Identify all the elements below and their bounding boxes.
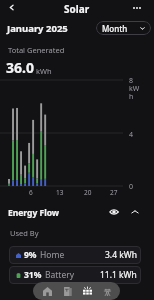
staticText: 8 <box>129 76 134 86</box>
staticText: 13 <box>56 188 64 197</box>
staticText: kWh <box>36 66 52 76</box>
staticText: Energy Flow <box>8 207 60 219</box>
button[interactable]: 31% <box>9 266 141 284</box>
button[interactable]: Devices <box>57 282 77 300</box>
button[interactable]: Grid <box>97 282 117 300</box>
button[interactable]: Toggle visibility <box>107 205 121 219</box>
button[interactable]: Back <box>3 0 19 15</box>
button[interactable]: Month <box>96 21 151 35</box>
staticText: Used By <box>10 228 39 238</box>
staticText: 20 <box>84 188 92 197</box>
staticText: 27 <box>110 188 118 197</box>
button[interactable]: 9% <box>9 246 141 264</box>
staticText: h <box>129 92 134 102</box>
staticText: 4 <box>129 130 134 140</box>
staticText: Total Generated <box>8 45 65 55</box>
staticText: 31% <box>24 269 42 281</box>
staticText: January 2025 <box>7 22 68 35</box>
staticText: 3.4 kWh <box>105 249 137 261</box>
staticText: kW <box>129 84 140 94</box>
staticText: 36.0 <box>6 58 34 77</box>
staticText: Home <box>40 249 65 261</box>
staticText: 6 <box>29 188 33 197</box>
button[interactable]: Collapse <box>128 205 142 219</box>
staticText: 0 <box>129 182 134 192</box>
button[interactable]: Solar <box>77 282 97 300</box>
staticText: Solar <box>64 2 90 16</box>
staticText: Battery <box>45 269 75 281</box>
button[interactable]: Home <box>37 282 57 300</box>
button[interactable]: More options <box>128 0 146 17</box>
staticText: Month <box>102 23 128 34</box>
staticText: 9% <box>24 249 37 261</box>
staticText: 11.1 kWh <box>100 269 137 281</box>
